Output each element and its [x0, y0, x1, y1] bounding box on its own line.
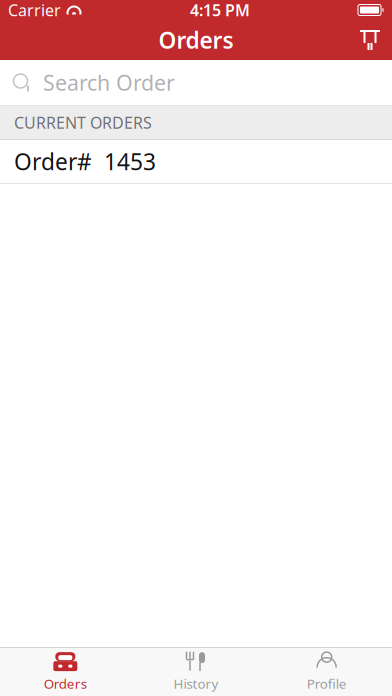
- staticText: 4:15 PM: [190, 0, 250, 21]
- staticText: CURRENT ORDERS: [14, 112, 152, 133]
- button[interactable]: Search Order: [0, 60, 392, 105]
- staticText: Orders: [44, 675, 87, 692]
- button[interactable]: Filter: [348, 20, 392, 60]
- staticText: Profile: [307, 675, 347, 692]
- staticText: Orders: [158, 25, 233, 55]
- staticText: History: [173, 675, 218, 692]
- staticText: Search Order: [43, 68, 175, 97]
- button[interactable]: Profile: [261, 648, 392, 696]
- staticText: Carrier: [8, 0, 61, 21]
- button[interactable]: History: [131, 648, 261, 696]
- button[interactable]: Order# 1453: [0, 140, 392, 183]
- staticText: Order# 1453: [14, 146, 156, 176]
- button[interactable]: Orders: [0, 648, 131, 696]
